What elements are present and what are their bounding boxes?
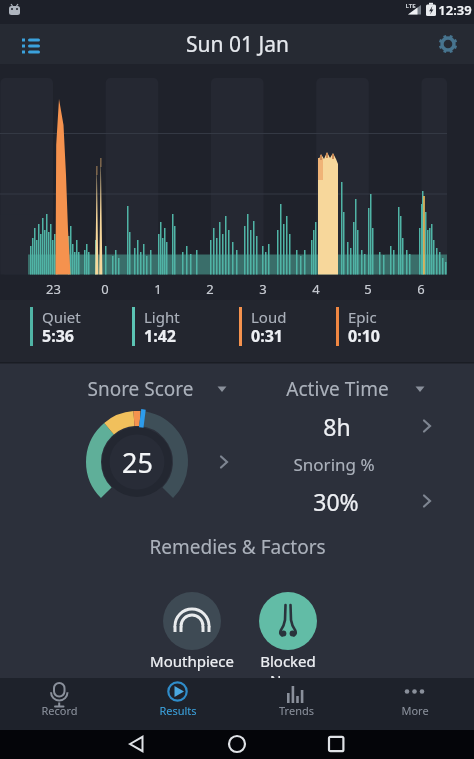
button[interactable]	[255, 370, 425, 410]
staticText: 23	[46, 280, 61, 298]
staticText: 6	[417, 280, 425, 298]
staticText: Active Time	[286, 376, 389, 402]
button[interactable]	[192, 730, 282, 759]
button[interactable]	[70, 370, 240, 410]
button[interactable]	[233, 302, 325, 358]
staticText: Trends	[279, 703, 314, 718]
staticText: Loud	[251, 307, 287, 327]
staticText: 5	[364, 280, 372, 298]
button[interactable]	[95, 730, 185, 759]
staticText: 8h	[323, 411, 351, 442]
staticText: 1:42	[144, 325, 176, 347]
staticText: 4	[312, 280, 320, 298]
button[interactable]	[158, 588, 226, 672]
staticText: Nose	[270, 670, 307, 678]
button[interactable]	[126, 302, 226, 358]
staticText: 1	[154, 280, 162, 298]
staticText: Remedies & Factors	[149, 534, 326, 560]
staticText: LTE	[405, 2, 416, 10]
button[interactable]	[290, 730, 380, 759]
button[interactable]	[118, 678, 237, 730]
button[interactable]	[330, 302, 422, 358]
staticText: More	[401, 703, 429, 718]
staticText: 12:39	[438, 1, 472, 19]
staticText: 25	[122, 444, 153, 481]
button[interactable]	[80, 405, 235, 520]
staticText: Snore Score	[87, 376, 194, 402]
staticText: Epic	[348, 307, 377, 327]
staticText: Snoring %	[293, 453, 375, 476]
staticText: Mouthpiece	[150, 651, 234, 671]
button[interactable]	[254, 588, 322, 672]
button[interactable]	[245, 406, 445, 446]
staticText: 30%	[313, 486, 359, 517]
staticText: 3	[259, 280, 267, 298]
button[interactable]	[237, 678, 356, 730]
button[interactable]	[430, 28, 468, 60]
staticText: Results	[159, 703, 197, 718]
staticText: 0:31	[251, 325, 283, 347]
button[interactable]	[356, 678, 474, 730]
staticText: 5:36	[42, 325, 74, 347]
button[interactable]	[24, 302, 124, 358]
staticText: 0	[101, 280, 109, 298]
staticText: Light	[144, 307, 180, 327]
staticText: 0:10	[348, 325, 380, 347]
button[interactable]	[0, 678, 118, 730]
staticText: Sun 01 Jan	[186, 30, 289, 59]
staticText: Quiet	[42, 307, 81, 327]
button[interactable]	[14, 28, 50, 60]
staticText: Blocked	[260, 651, 316, 671]
button[interactable]	[245, 481, 445, 521]
staticText: 2	[206, 280, 214, 298]
staticText: Record	[41, 703, 78, 718]
